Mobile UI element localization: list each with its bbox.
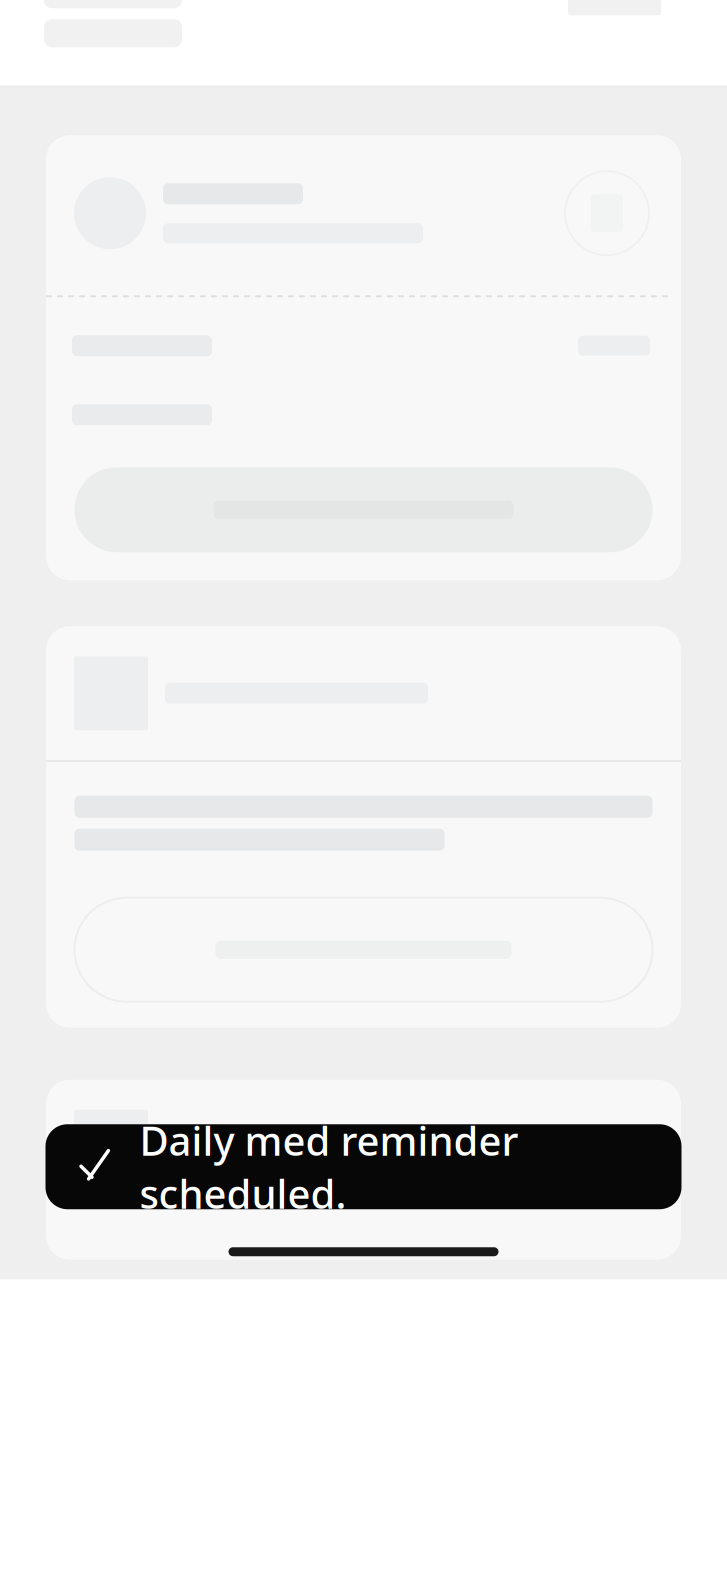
button[interactable]: Secondary action [74,898,652,1002]
button[interactable]: Primary action [74,467,652,552]
staticText: Daily med reminder scheduled. [139,1114,518,1220]
